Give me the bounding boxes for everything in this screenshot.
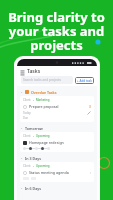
staticText: Marketing [36, 98, 50, 102]
staticText: Upcoming [36, 134, 50, 138]
button[interactable]: In 6 Days [17, 184, 97, 192]
staticText: Bring clarity to your tasks and projects [8, 8, 105, 54]
button[interactable]: Client [20, 132, 94, 152]
staticText: Client [23, 134, 31, 138]
staticText: Homepage redesign [29, 140, 64, 145]
staticText: 3 [89, 105, 91, 109]
staticText: In 3 Days [25, 156, 42, 161]
staticText: Overdue Tasks [31, 90, 57, 95]
button[interactable]: Client [20, 96, 94, 122]
staticText: Due [23, 116, 28, 120]
staticText: Client [23, 164, 31, 168]
staticText: Search tasks and projects [23, 78, 61, 82]
staticText: In 6 Days [25, 186, 42, 191]
staticText: Today [23, 111, 31, 115]
staticText: Client [23, 98, 31, 102]
button[interactable]: In 3 Days [17, 154, 97, 162]
staticText: Tomorrow [25, 126, 43, 131]
button[interactable]: Search tasks and projects [21, 76, 73, 84]
button[interactable]: Client [20, 162, 94, 182]
staticText: Prepare proposal [29, 104, 59, 109]
button[interactable]: Menu [20, 69, 25, 74]
staticText: Tasks [27, 68, 41, 75]
button[interactable]: + Add task [75, 77, 94, 84]
staticText: + Add task [77, 79, 92, 83]
staticText: Upcoming [36, 164, 50, 168]
button[interactable]: Overdue Tasks [17, 88, 97, 96]
button[interactable]: Tomorrow [17, 124, 97, 132]
staticText: › [90, 171, 91, 175]
staticText: Status meeting agenda [29, 170, 69, 175]
